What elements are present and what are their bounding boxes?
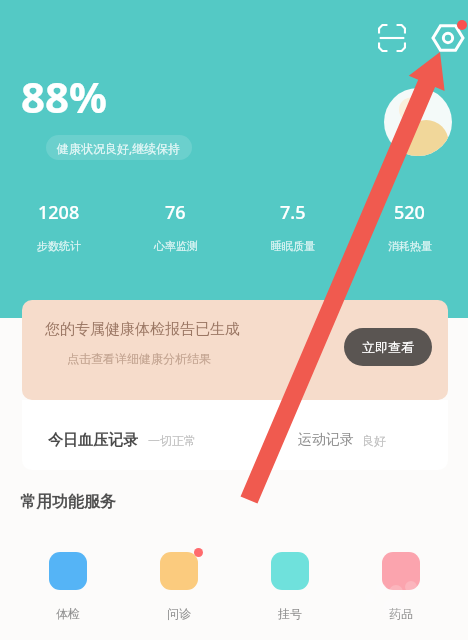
button[interactable]: 520 — [351, 200, 468, 253]
button[interactable]: 挂号 — [234, 552, 345, 621]
staticText: 76 — [165, 200, 186, 225]
button[interactable]: 健康状况良好,继续保持 — [46, 135, 192, 160]
staticText: 520 — [394, 200, 425, 225]
button[interactable]: Profile — [384, 88, 452, 156]
staticText: 您的专属健康体检报告已生成 — [45, 320, 240, 339]
staticText: 立即查看 — [362, 339, 414, 355]
button[interactable]: 体检 — [12, 552, 123, 621]
button[interactable]: 今日血压记录 — [22, 400, 235, 470]
staticText: 药品 — [389, 606, 413, 621]
staticText: 1208 — [38, 200, 80, 225]
staticText: 健康状况良好,继续保持 — [57, 140, 181, 156]
staticText: 问诊 — [167, 606, 191, 621]
button[interactable]: Settings — [427, 11, 468, 52]
button[interactable]: 常用功能服务 — [20, 492, 116, 512]
button[interactable]: 76 — [117, 200, 234, 253]
button[interactable]: 立即查看 — [344, 328, 432, 366]
staticText: 消耗热量 — [388, 239, 432, 253]
button[interactable]: 运动记录 — [235, 400, 448, 470]
button[interactable]: 药品 — [345, 552, 456, 621]
staticText: 点击查看详细健康分析结果 — [67, 351, 211, 366]
button[interactable]: 7.5 — [234, 200, 351, 253]
staticText: 良好 — [362, 433, 386, 448]
button[interactable]: 您的专属健康体检报告已生成 — [22, 300, 448, 400]
button[interactable]: Scan — [371, 17, 412, 58]
staticText: 今日血压记录 — [48, 431, 138, 450]
staticText: 运动记录 — [298, 431, 354, 449]
staticText: 7.5 — [280, 200, 306, 225]
staticText: 体检 — [56, 606, 80, 621]
staticText: 挂号 — [278, 606, 302, 621]
button[interactable]: 问诊 — [123, 552, 234, 621]
staticText: 睡眠质量 — [271, 239, 315, 253]
staticText: 心率监测 — [154, 239, 198, 253]
staticText: 步数统计 — [37, 239, 81, 253]
button[interactable]: 1208 — [0, 200, 117, 253]
staticText: 常用功能服务 — [20, 492, 116, 512]
staticText: 88% — [21, 68, 107, 125]
staticText: 一切正常 — [148, 433, 196, 448]
